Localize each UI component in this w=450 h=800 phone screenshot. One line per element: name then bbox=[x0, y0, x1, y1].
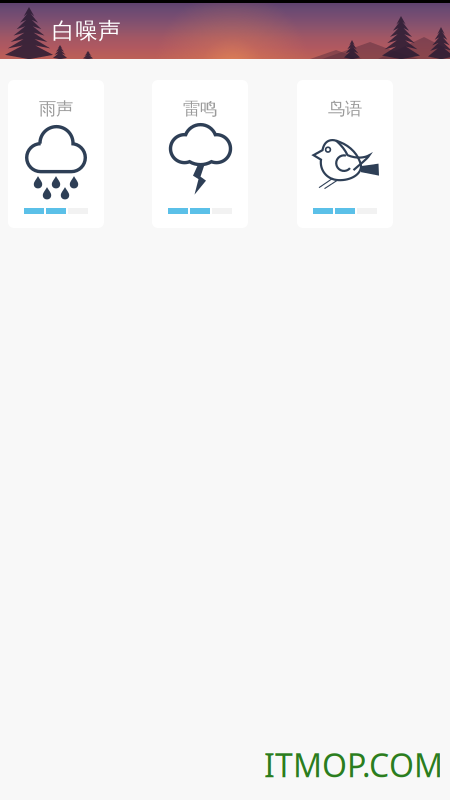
staticText: 鸟语 bbox=[328, 98, 362, 119]
staticText: ITMOP.COM bbox=[264, 743, 443, 786]
staticText: 白噪声 bbox=[52, 17, 121, 45]
staticText: 雷鸣 bbox=[183, 98, 217, 119]
button[interactable]: 雷鸣 bbox=[152, 80, 248, 228]
button[interactable]: 鸟语 bbox=[297, 80, 393, 228]
button[interactable]: 雨声 bbox=[8, 80, 104, 228]
staticText: 雨声 bbox=[39, 98, 73, 119]
